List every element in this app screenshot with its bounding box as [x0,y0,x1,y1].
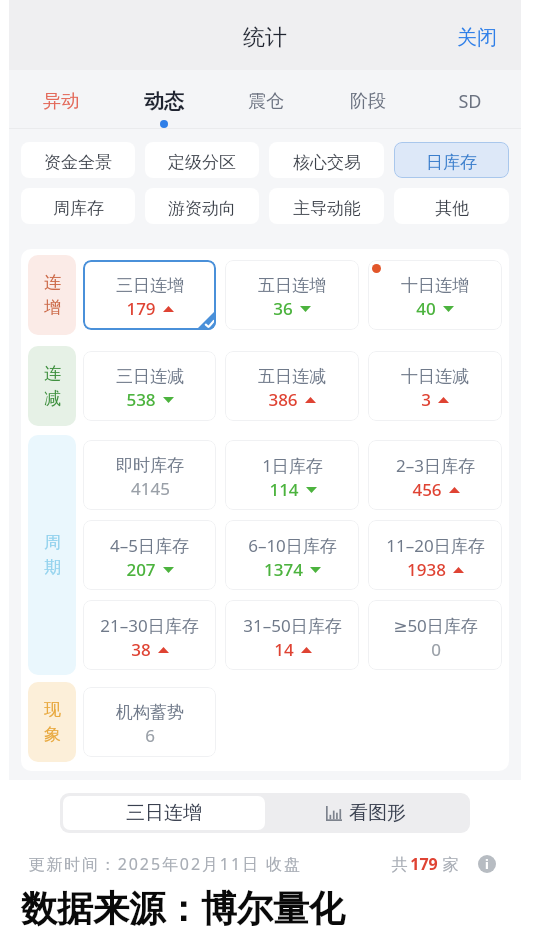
staticText: 386 [268,388,298,411]
button[interactable]: 现 [28,682,76,762]
button[interactable]: 周 [28,435,76,675]
button[interactable]: 连 [28,346,76,426]
button[interactable]: 6–10日库存 [225,520,359,590]
staticText: 十日连减 [401,366,469,387]
staticText: 十日连增 [401,275,469,296]
staticText: 周 [44,532,61,553]
button[interactable]: 4–5日库存 [83,520,216,590]
staticText: 31–50日库存 [243,614,342,637]
button[interactable]: 三日连增 [83,260,216,330]
button[interactable]: ≥50日库存 [368,600,502,670]
button[interactable]: 异动 [9,70,112,129]
staticText: 2–3日库存 [396,454,475,477]
button[interactable]: 三日连减 [83,351,216,421]
button[interactable]: 动态 [112,70,215,129]
staticText: 即时库存 [116,455,184,476]
button[interactable]: 五日连减 [225,351,359,421]
button[interactable]: 其他 [394,188,509,224]
staticText: 看图形 [349,801,406,825]
staticText: 增 [44,297,61,318]
button[interactable]: 定级分区 [145,142,259,178]
staticText: i [485,855,489,873]
staticText: 179 [410,853,438,875]
staticText: 4–5日库存 [110,534,189,557]
button[interactable]: 周库存 [21,188,135,224]
staticText: 538 [126,388,156,411]
button[interactable]: Info [478,855,496,873]
staticText: 38 [131,638,151,661]
staticText: 连 [44,363,61,384]
staticText: 11–20日库存 [386,534,485,557]
staticText: 震仓 [248,90,284,113]
staticText: 456 [412,478,442,501]
staticText: 连 [44,272,61,293]
staticText: 6 [145,724,155,747]
staticText: 三日连增 [126,801,202,825]
button[interactable]: 21–30日库存 [83,600,216,670]
staticText: 统计 [243,24,287,52]
staticText: 共 [389,853,410,875]
button[interactable]: 五日连增 [225,260,359,330]
button[interactable]: 三日连增 [63,796,265,830]
staticText: 三日连减 [116,366,184,387]
button[interactable]: 机构蓄势 [83,687,216,757]
button[interactable]: 震仓 [215,70,317,129]
staticText: 现 [44,699,61,720]
staticText: 机构蓄势 [116,702,184,723]
staticText: 三日连增 [116,275,184,296]
button[interactable]: 1日库存 [225,440,359,510]
staticText: 4145 [131,477,170,500]
staticText: 36 [273,297,293,320]
staticText: 114 [269,478,299,501]
button[interactable]: 31–50日库存 [225,600,359,670]
button[interactable]: 2–3日库存 [368,440,502,510]
staticText: 21–30日库存 [100,614,199,637]
staticText: 其他 [435,198,469,219]
staticText: 数据来源：博尔量化 [21,886,345,931]
staticText: 1374 [264,558,303,581]
staticText: 象 [44,724,61,745]
staticText: 异动 [43,90,79,113]
staticText: SD [458,89,482,114]
staticText: 游资动向 [168,198,236,219]
staticText: 日库存 [426,152,477,173]
staticText: 40 [416,297,436,320]
button[interactable]: 关闭 [443,17,521,58]
staticText: 家 [438,853,459,875]
button[interactable]: 核心交易 [269,142,384,178]
staticText: 14 [274,638,294,661]
staticText: 3 [421,388,431,411]
button[interactable]: 11–20日库存 [368,520,502,590]
staticText: 179 [126,297,156,320]
staticText: 0 [431,638,441,661]
staticText: 资金全景 [44,152,112,173]
button[interactable]: 游资动向 [145,188,259,224]
button[interactable]: 阶段 [317,70,419,129]
staticText: 关闭 [457,25,497,50]
staticText: 1938 [407,558,446,581]
staticText: 定级分区 [168,152,236,173]
button[interactable]: 日库存 [394,142,509,178]
button[interactable]: 看图形 [265,796,467,830]
staticText: 1日库存 [262,454,323,477]
button[interactable]: 资金全景 [21,142,135,178]
staticText: 阶段 [350,90,386,113]
button[interactable]: SD [419,70,521,129]
staticText: 主导动能 [293,198,361,219]
staticText: ≥50日库存 [393,614,478,637]
staticText: 期 [44,557,61,578]
staticText: 动态 [144,89,184,114]
button[interactable]: 连 [28,255,76,335]
staticText: 五日连增 [258,275,326,296]
staticText: 6–10日库存 [248,534,337,557]
staticText: 五日连减 [258,366,326,387]
button[interactable]: 主导动能 [269,188,384,224]
button[interactable]: 十日连增 [368,260,502,330]
staticText: 207 [126,558,156,581]
staticText: 周库存 [53,198,104,219]
staticText: 核心交易 [293,152,361,173]
button[interactable]: 即时库存 [83,440,216,510]
staticText: 更新时间：2025年02月11日 收盘 [28,853,302,875]
button[interactable]: 十日连减 [368,351,502,421]
staticText: 减 [44,388,61,409]
